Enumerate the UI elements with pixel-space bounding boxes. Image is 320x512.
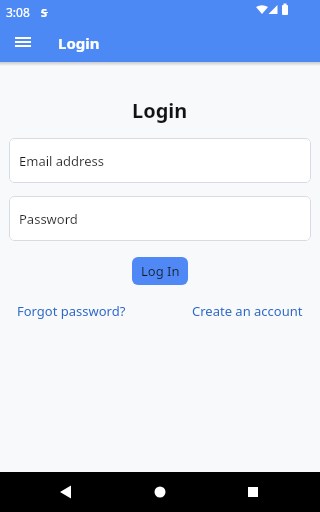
staticText: Log In (141, 262, 180, 280)
staticText: 3:08 (6, 4, 30, 20)
staticText: Login (132, 97, 188, 124)
staticText: Forgot password? (17, 302, 126, 320)
staticText: S (41, 5, 48, 20)
button[interactable] (106, 472, 213, 512)
button[interactable] (0, 24, 46, 62)
button[interactable]: Forgot password? (17, 302, 126, 320)
button[interactable]: Create an account (192, 302, 303, 320)
staticText: Password (19, 210, 78, 228)
button[interactable]: Password (9, 196, 311, 241)
staticText: Create an account (192, 302, 303, 320)
button[interactable]: Log In (132, 257, 188, 285)
button[interactable]: Email address (9, 138, 311, 183)
staticText: Email address (19, 152, 104, 170)
button[interactable] (0, 472, 106, 512)
staticText: Login (58, 33, 100, 53)
button[interactable] (213, 472, 320, 512)
